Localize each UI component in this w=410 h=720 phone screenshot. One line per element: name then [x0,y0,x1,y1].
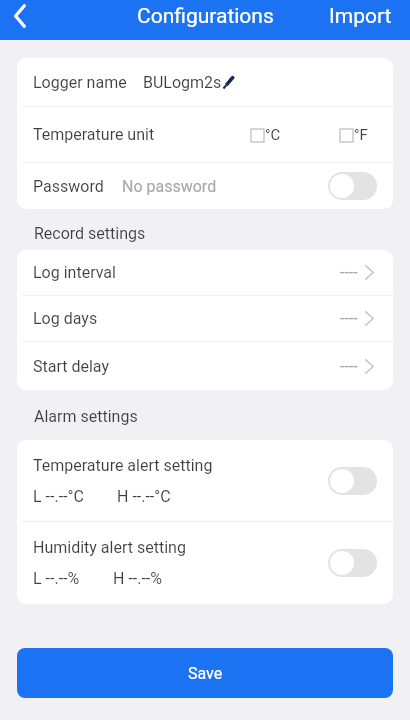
staticText: Record settings [34,224,146,243]
button[interactable]: Toggle [328,467,377,495]
staticText: H --.--% [113,569,163,588]
staticText: L --.--% [33,569,80,588]
button[interactable]: Log days [17,296,393,341]
staticText: Alarm settings [34,407,138,426]
staticText: Temperature alert setting [33,456,213,475]
button[interactable]: Humidity alert setting [17,522,393,604]
button[interactable]: Temperature alert setting [17,440,393,521]
staticText: L --.--°C [33,487,84,506]
button[interactable]: Save [17,648,393,698]
staticText: ---- [340,263,358,282]
staticText: °F [354,126,368,144]
button[interactable]: Log interval [17,250,393,295]
staticText: ---- [340,309,358,328]
staticText: Import [329,4,392,29]
staticText: Start delay [33,357,110,376]
staticText: Temperature unit [33,125,155,144]
button[interactable]: °C [251,122,281,148]
button[interactable]: Temperature unit [17,107,393,162]
button[interactable]: Toggle [328,549,377,577]
button[interactable]: °F [340,122,368,148]
button[interactable]: Start delay [17,342,393,390]
staticText: Log days [33,309,98,328]
button[interactable]: Logger name [17,58,393,106]
button[interactable]: Back [14,0,44,34]
staticText: °C [265,126,281,144]
staticText: ---- [340,357,358,376]
staticText: Configurations [137,4,274,29]
staticText: Save [188,664,223,683]
staticText: Logger name [33,73,127,92]
staticText: Log interval [33,263,116,282]
staticText: Password [33,177,104,196]
staticText: No password [122,177,217,196]
staticText: H --.--°C [117,487,171,506]
button[interactable]: Password [17,163,393,209]
staticText: BULogm2s [143,73,222,92]
button[interactable]: Toggle [328,172,377,200]
button[interactable]: Import [319,0,410,33]
staticText: Humidity alert setting [33,538,186,557]
